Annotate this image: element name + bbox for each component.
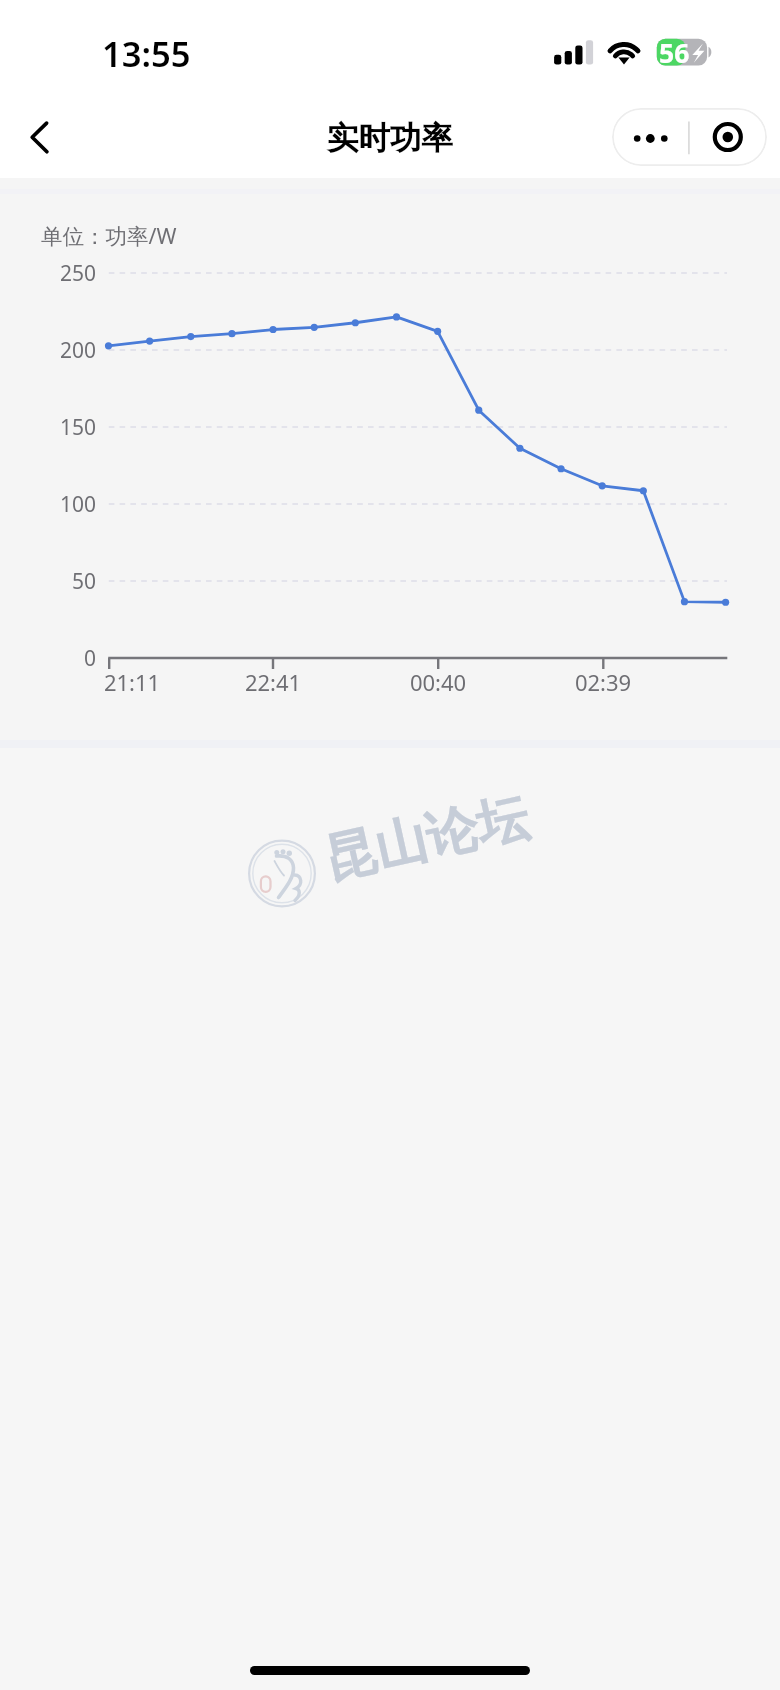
staticText: 13:55 xyxy=(102,30,191,77)
staticText: 00:40 xyxy=(378,667,498,697)
staticText: 50 xyxy=(0,567,96,596)
staticText: 150 xyxy=(0,413,96,442)
staticText: 21:11 xyxy=(72,667,192,697)
button[interactable]: More options xyxy=(612,108,767,166)
staticText: 单位：功率/W xyxy=(41,221,177,250)
staticText: 250 xyxy=(0,259,96,288)
staticText: 200 xyxy=(0,336,96,365)
staticText: 昆山论坛 xyxy=(318,784,534,890)
staticText: 0 xyxy=(0,644,96,673)
staticText: 100 xyxy=(0,490,96,519)
staticText: 56 xyxy=(659,35,690,71)
staticText: 22:41 xyxy=(213,667,333,697)
staticText: 实时功率 xyxy=(327,119,453,159)
button[interactable]: Back xyxy=(4,101,76,173)
staticText: 02:39 xyxy=(543,667,663,697)
